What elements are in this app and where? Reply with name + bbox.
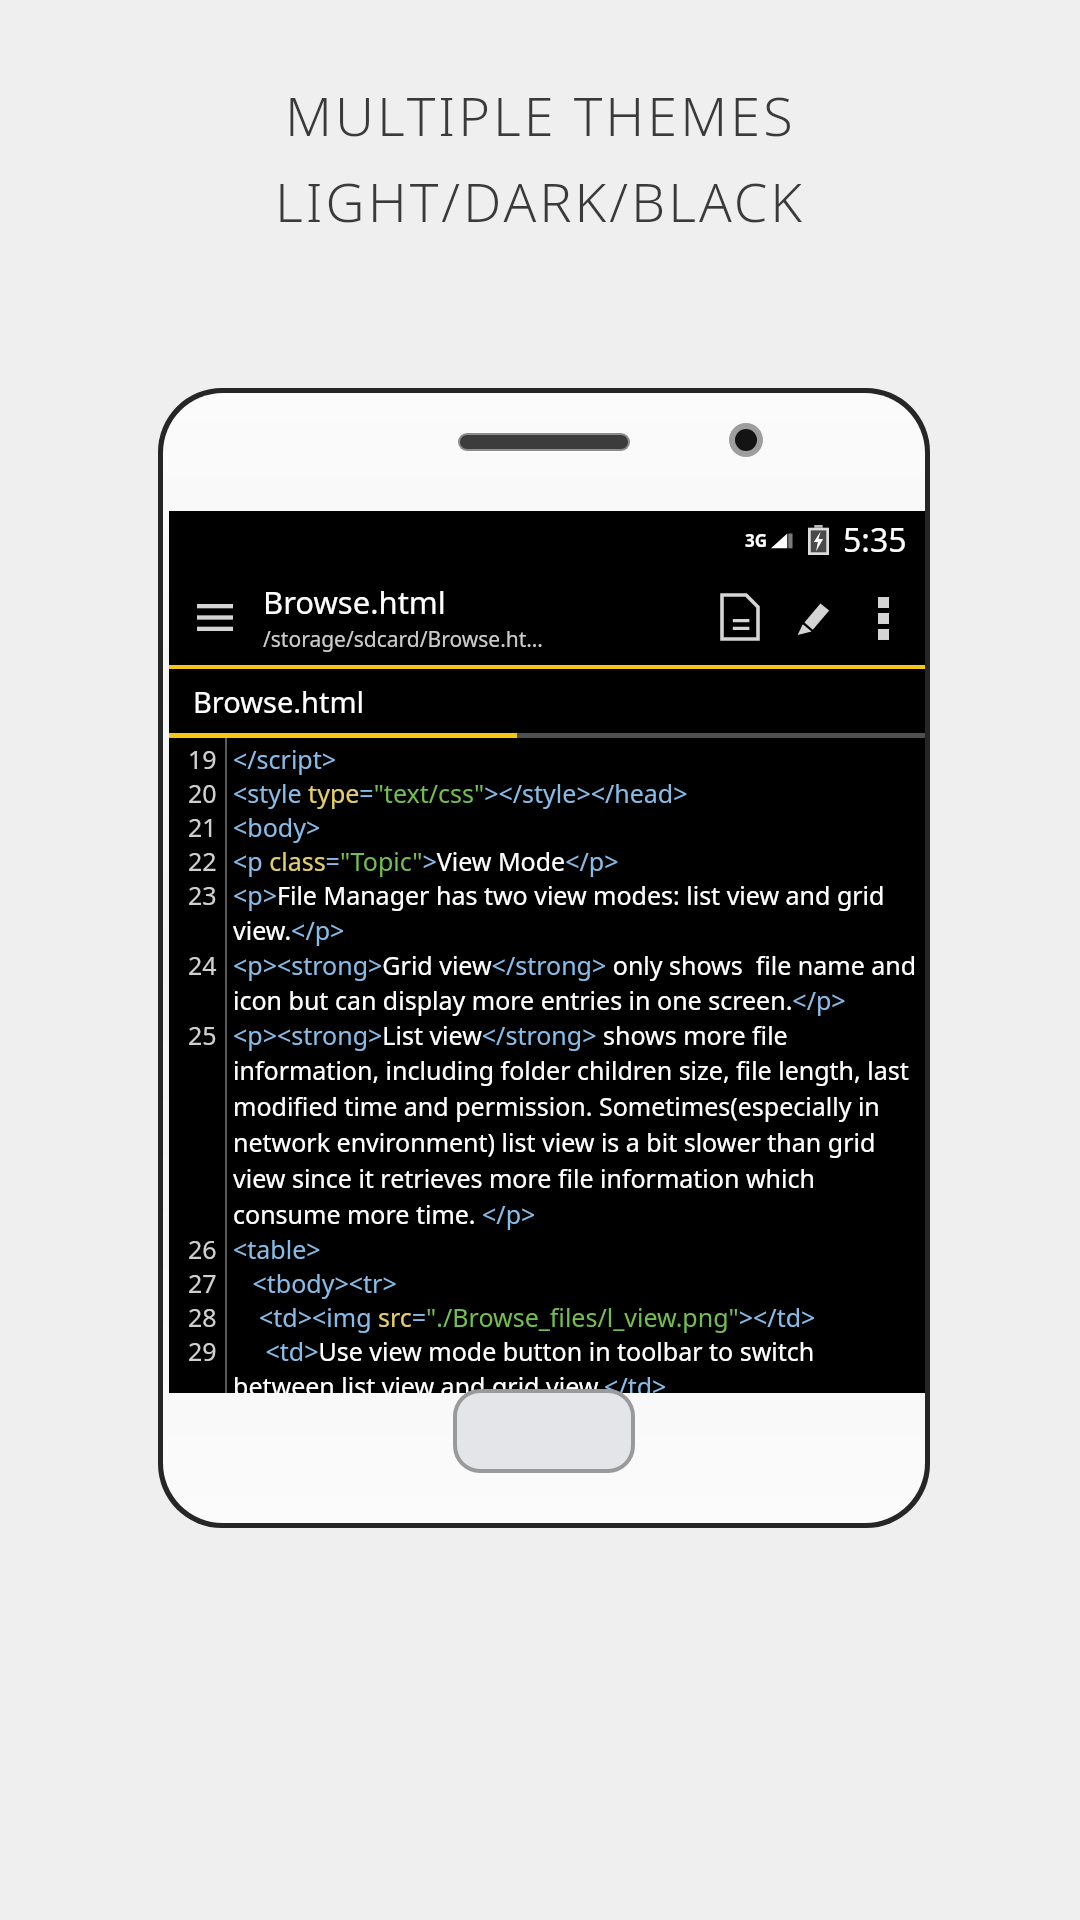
button[interactable]: Navigation menu [181,583,249,651]
staticText: 24 [188,948,217,982]
staticText: MULTIPLE THEMES [285,78,796,152]
staticText: <p><strong>Grid view</strong> only shows… [233,948,917,1018]
staticText: <td><img src="./Browse_files/l_view.png"… [233,1300,816,1334]
staticText: <td>Use view mode button in toolbar to s… [233,1334,917,1393]
button[interactable]: Document [703,580,777,654]
staticText: Browse.html [193,682,365,721]
staticText: 23 [188,878,217,912]
staticText: 20 [188,776,217,810]
staticText: <p>File Manager has two view modes: list… [233,878,917,948]
staticText: 26 [188,1232,217,1266]
staticText: 27 [188,1266,217,1300]
staticText: <p><strong>List view</strong> shows more… [233,1018,917,1232]
staticText: 5:35 [843,518,907,562]
staticText: LIGHT/DARK/BLACK [275,164,806,238]
staticText: <style type="text/css"></style></head> [233,776,688,810]
staticText: </script> [233,742,337,776]
staticText: <p class="Topic">View Mode</p> [233,844,619,878]
staticText: 29 [188,1334,217,1368]
button[interactable]: Browse.html [169,669,925,733]
staticText: 22 [188,844,217,878]
staticText: 3G [745,529,768,552]
staticText: 28 [188,1300,217,1334]
staticText: <body> [233,810,321,844]
button[interactable]: Edit [777,580,851,654]
staticText: 25 [188,1018,217,1052]
staticText: /storage/sdcard/Browse.ht… [263,625,543,654]
staticText: <tbody><tr> [233,1266,397,1300]
staticText: 19 [188,742,217,776]
staticText: 21 [188,810,217,844]
staticText: <table> [233,1232,321,1266]
button[interactable]: More options [851,580,915,654]
staticText: Browse.html [263,581,446,623]
